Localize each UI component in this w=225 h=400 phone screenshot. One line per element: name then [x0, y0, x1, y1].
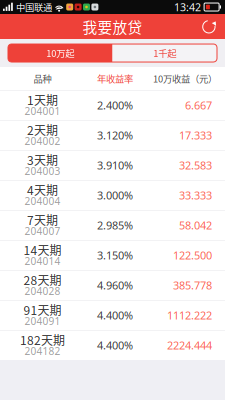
button[interactable]: 14天期	[0, 241, 225, 270]
staticText: 4.960%	[97, 278, 133, 293]
staticText: 204028	[24, 284, 60, 298]
staticText: 中国联通	[16, 0, 52, 14]
staticText: 28天期	[23, 271, 61, 289]
staticText: 1天期	[27, 91, 58, 109]
button[interactable]: 3天期	[0, 151, 225, 180]
button[interactable]: 10万起	[8, 44, 112, 62]
staticText: 10万收益（元）	[153, 72, 217, 85]
staticText: 3.120%	[97, 128, 133, 143]
staticText: 2天期	[27, 121, 58, 139]
staticText: 204007	[24, 224, 60, 238]
staticText: 14天期	[23, 241, 61, 259]
staticText: 6.667	[185, 98, 212, 113]
staticText: 17.333	[179, 128, 212, 143]
staticText: 33.333	[179, 188, 212, 203]
staticText: 204001	[24, 104, 60, 118]
staticText: 204004	[24, 194, 60, 208]
button[interactable]: 刷新	[195, 14, 223, 39]
button[interactable]: 4天期	[0, 181, 225, 210]
button[interactable]: 91天期	[0, 301, 225, 330]
staticText: 1112.222	[167, 308, 212, 323]
staticText: 3.150%	[97, 248, 133, 263]
button[interactable]: 1千起	[112, 44, 217, 62]
staticText: 13:42	[174, 0, 201, 14]
button[interactable]: 7天期	[0, 211, 225, 240]
staticText: 204014	[24, 254, 60, 268]
button[interactable]: 1天期	[0, 91, 225, 120]
staticText: 385.778	[173, 278, 212, 293]
button[interactable]: 2天期	[0, 121, 225, 150]
staticText: 3.000%	[97, 188, 133, 203]
staticText: 品种	[33, 72, 51, 85]
staticText: 58.042	[179, 218, 212, 233]
staticText: 10万起	[46, 46, 74, 60]
staticText: 4.400%	[97, 338, 133, 353]
staticText: 204003	[24, 164, 60, 178]
button[interactable]: 182天期	[0, 331, 225, 360]
button[interactable]: 28天期	[0, 271, 225, 300]
staticText: 1千起	[153, 46, 176, 60]
staticText: 3天期	[27, 151, 58, 169]
staticText: 我要放贷	[82, 16, 142, 37]
staticText: 122.500	[173, 248, 212, 263]
staticText: 204002	[24, 134, 60, 148]
staticText: 2.985%	[97, 218, 133, 233]
staticText: 4天期	[27, 181, 58, 199]
staticText: 204182	[24, 344, 60, 358]
staticText: 182天期	[20, 331, 65, 349]
staticText: 91天期	[23, 301, 61, 319]
staticText: 7天期	[27, 211, 58, 229]
staticText: 4.400%	[97, 308, 133, 323]
staticText: 2224.444	[167, 338, 212, 353]
staticText: 32.583	[179, 158, 212, 173]
staticText: 2.400%	[97, 98, 133, 113]
staticText: 3.910%	[97, 158, 133, 173]
staticText: 年收益率	[97, 72, 133, 85]
staticText: 204091	[24, 314, 60, 328]
